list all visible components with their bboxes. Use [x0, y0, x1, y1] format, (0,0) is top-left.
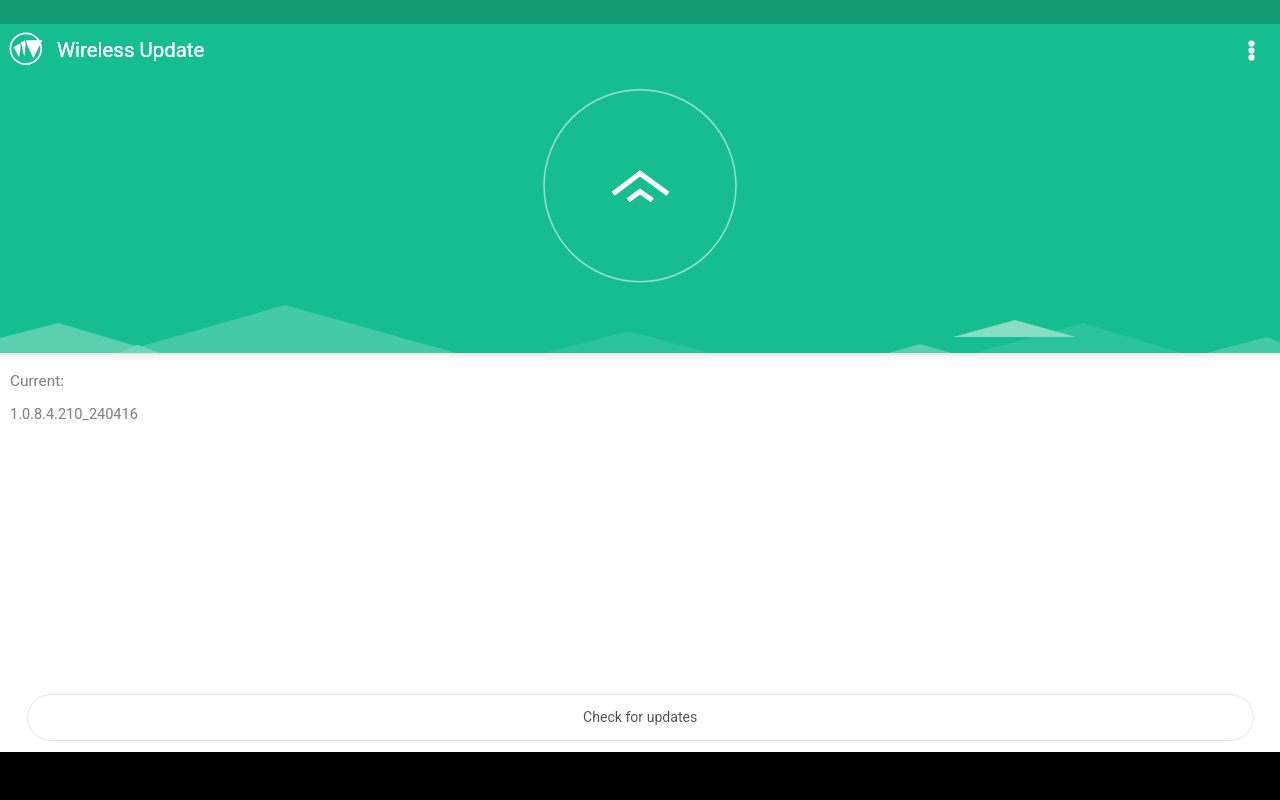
button[interactable]: More options	[1225, 24, 1280, 80]
staticText: Wireless Update	[57, 38, 205, 62]
staticText: Current:	[10, 372, 64, 390]
staticText: Check for updates	[583, 709, 698, 726]
button[interactable]: Check for updates	[27, 694, 1254, 741]
staticText: 1.0.8.4.210_240416	[10, 406, 138, 423]
